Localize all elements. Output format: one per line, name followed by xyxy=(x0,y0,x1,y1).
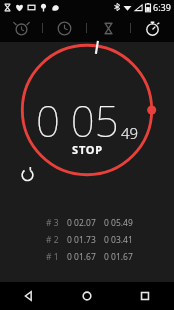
staticText: 0 03.41 xyxy=(104,234,133,246)
staticText: 0 02.07 xyxy=(67,217,96,229)
button[interactable]: # 3 xyxy=(0,214,174,231)
button[interactable]: STOP xyxy=(62,140,113,159)
button[interactable]: Alarm xyxy=(0,14,42,42)
staticText: 0 01.67 xyxy=(104,251,133,263)
staticText: # 1 xyxy=(46,251,59,263)
button[interactable]: Timer xyxy=(87,14,130,42)
button[interactable]: Stopwatch xyxy=(131,14,174,42)
staticText: 0 05.49 xyxy=(104,217,133,229)
staticText: 0 01.67 xyxy=(67,251,96,263)
staticText: # 2 xyxy=(46,234,59,246)
button[interactable]: Home xyxy=(58,282,116,310)
button[interactable]: # 2 xyxy=(0,231,174,248)
staticText: STOP xyxy=(72,142,103,157)
button[interactable]: Reset xyxy=(15,162,39,186)
staticText: 0 05 xyxy=(36,92,119,149)
button[interactable]: Recent apps xyxy=(116,282,174,310)
staticText: 49 xyxy=(121,123,139,143)
button[interactable]: Back xyxy=(0,282,58,310)
staticText: # 3 xyxy=(46,217,59,229)
button[interactable]: World clock xyxy=(43,14,86,42)
staticText: 6:39 xyxy=(153,1,171,13)
button[interactable]: # 1 xyxy=(0,248,174,265)
staticText: 0 01.73 xyxy=(67,234,96,246)
